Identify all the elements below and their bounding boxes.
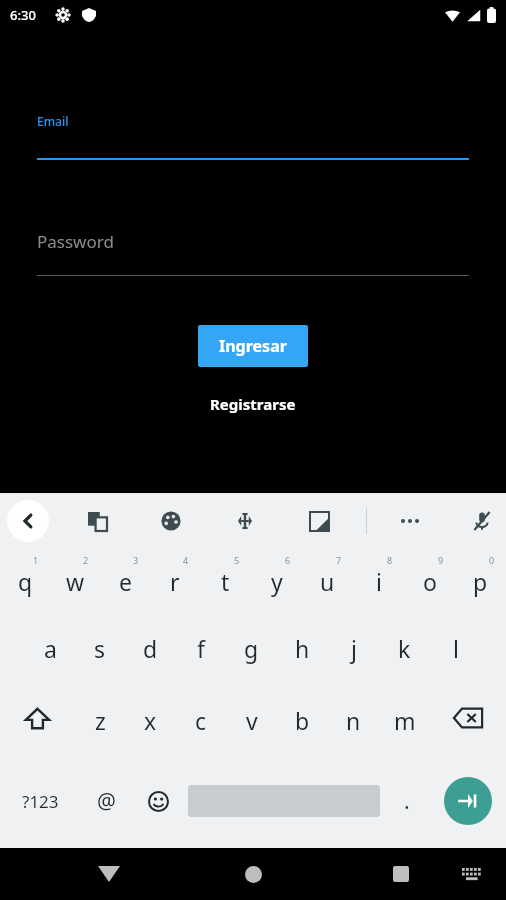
button[interactable]: 1 <box>0 548 50 610</box>
staticText: l <box>453 633 459 664</box>
staticText: f <box>197 633 205 664</box>
staticText: n <box>346 705 361 736</box>
button[interactable]: z <box>75 682 125 754</box>
button[interactable]: 8 <box>353 548 404 610</box>
staticText: 4 <box>183 554 189 566</box>
button[interactable]: Resize keyboard <box>301 503 337 539</box>
staticText: 3 <box>133 554 139 566</box>
button[interactable]: j <box>328 610 379 682</box>
staticText: Password <box>37 230 114 253</box>
button[interactable]: Theme <box>153 503 189 539</box>
staticText: v <box>246 705 258 736</box>
staticText: m <box>394 705 416 736</box>
staticText: Registrarse <box>210 394 296 414</box>
button[interactable]: 2 <box>50 548 100 610</box>
staticText: g <box>244 633 259 664</box>
staticText: i <box>376 566 382 597</box>
staticText: Email <box>37 113 69 129</box>
staticText: p <box>473 566 488 597</box>
button[interactable]: 0 <box>455 548 506 610</box>
button[interactable]: 7 <box>302 548 353 610</box>
button[interactable]: Translate <box>79 503 115 539</box>
button[interactable]: Home <box>232 853 274 895</box>
staticText: t <box>221 566 230 597</box>
button[interactable]: Voice input off <box>464 503 500 539</box>
button[interactable]: Emoji <box>132 754 184 848</box>
staticText: q <box>18 566 33 597</box>
staticText: c <box>195 705 207 736</box>
staticText: h <box>295 633 310 664</box>
staticText: 6:30 <box>10 6 36 24</box>
staticText: s <box>94 633 106 664</box>
button[interactable]: x <box>125 682 175 754</box>
button[interactable]: 9 <box>404 548 455 610</box>
button[interactable]: 3 <box>100 548 150 610</box>
button[interactable]: f <box>175 610 226 682</box>
button[interactable]: n <box>328 682 379 754</box>
button[interactable]: v <box>226 682 277 754</box>
staticText: b <box>295 705 310 736</box>
staticText: . <box>404 787 410 816</box>
button[interactable]: ?123 <box>0 754 80 848</box>
button[interactable]: a <box>25 610 75 682</box>
staticText: 6 <box>285 554 291 566</box>
staticText: d <box>143 633 158 664</box>
button[interactable]: Ingresar <box>198 325 308 367</box>
button[interactable]: Back <box>88 853 130 895</box>
button[interactable]: Enter <box>430 754 506 848</box>
button[interactable]: c <box>175 682 226 754</box>
button[interactable]: Move cursor <box>227 503 263 539</box>
button[interactable]: g <box>226 610 277 682</box>
staticText: u <box>320 566 335 597</box>
staticText: 5 <box>234 554 240 566</box>
staticText: 2 <box>83 554 89 566</box>
button[interactable]: d <box>125 610 175 682</box>
button[interactable]: @ <box>80 754 132 848</box>
staticText: y <box>271 566 283 597</box>
staticText: 7 <box>336 554 342 566</box>
staticText: @ <box>97 787 116 816</box>
button[interactable]: Backspace <box>430 682 506 754</box>
button[interactable]: More options <box>392 503 428 539</box>
staticText: 0 <box>489 554 495 566</box>
button[interactable]: l <box>430 610 481 682</box>
button[interactable]: 5 <box>200 548 251 610</box>
staticText: a <box>44 633 57 664</box>
button[interactable]: . <box>384 754 430 848</box>
staticText: w <box>66 566 85 597</box>
button[interactable]: k <box>379 610 430 682</box>
button[interactable]: 6 <box>251 548 302 610</box>
button[interactable]: Shift <box>0 682 75 754</box>
staticText: o <box>423 566 437 597</box>
staticText: Ingresar <box>219 335 287 357</box>
button[interactable]: Recents <box>380 853 422 895</box>
staticText: z <box>95 705 106 736</box>
staticText: j <box>351 633 357 664</box>
button[interactable]: 4 <box>150 548 200 610</box>
staticText: x <box>144 705 157 736</box>
staticText: k <box>398 633 411 664</box>
button[interactable]: s <box>75 610 125 682</box>
button[interactable]: m <box>379 682 430 754</box>
staticText: ?123 <box>22 790 59 813</box>
button[interactable]: h <box>277 610 328 682</box>
button[interactable]: b <box>277 682 328 754</box>
staticText: 8 <box>387 554 393 566</box>
staticText: e <box>119 566 132 597</box>
staticText: 9 <box>438 554 444 566</box>
staticText: r <box>170 566 180 597</box>
button[interactable]: Registrarse <box>200 390 306 418</box>
staticText: 1 <box>33 554 39 566</box>
button[interactable]: Switch keyboard <box>454 856 490 892</box>
button[interactable]: Back <box>7 500 49 542</box>
